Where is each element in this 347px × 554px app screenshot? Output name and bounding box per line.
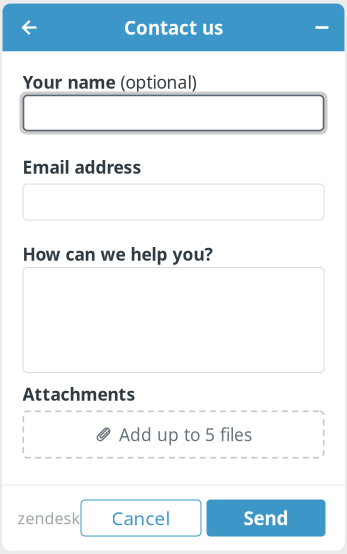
staticText: Attachments bbox=[22, 382, 135, 405]
staticText: (optional) bbox=[115, 70, 196, 93]
staticText: Cancel bbox=[111, 506, 170, 530]
button[interactable]: Minimize bbox=[299, 3, 344, 51]
staticText: zendesk bbox=[17, 507, 80, 529]
staticText: Your name bbox=[22, 70, 115, 93]
button[interactable]: Cancel bbox=[80, 499, 201, 536]
button[interactable]: Back bbox=[2, 3, 56, 51]
staticText: Send bbox=[243, 506, 288, 530]
button[interactable]: Add up to 5 files bbox=[22, 410, 324, 458]
staticText: Email address bbox=[22, 155, 141, 178]
button[interactable]: Send bbox=[206, 499, 325, 536]
staticText: Add up to 5 files bbox=[119, 423, 252, 446]
staticText: How can we help you? bbox=[22, 242, 212, 265]
staticText: Contact us bbox=[124, 15, 223, 40]
